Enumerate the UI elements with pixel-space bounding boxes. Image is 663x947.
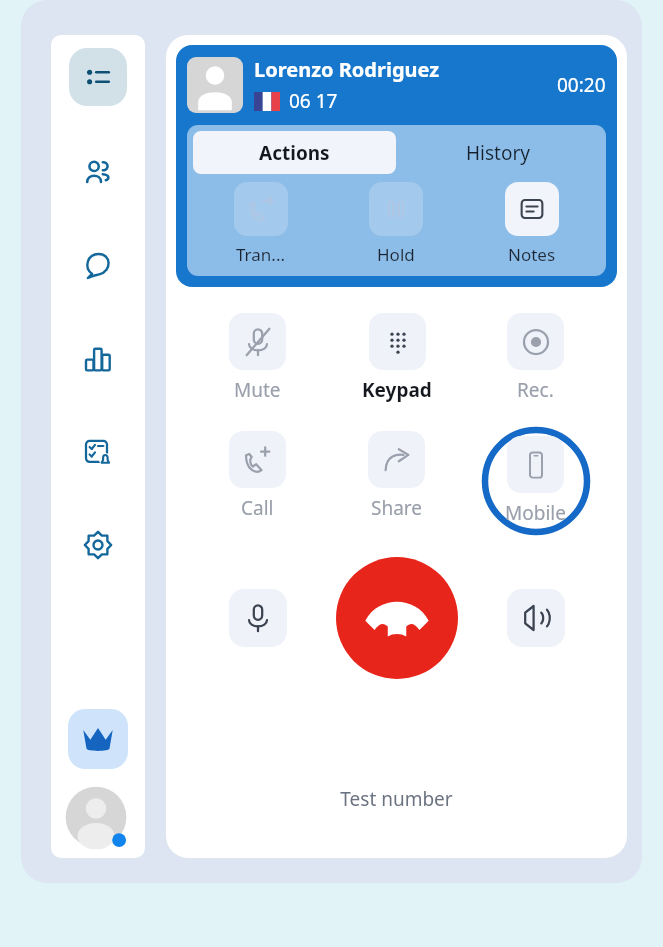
staticText: Tran... (236, 243, 285, 266)
staticText: History (466, 140, 530, 166)
staticText: Keypad (362, 377, 432, 403)
button[interactable]: Microphone (229, 589, 287, 647)
button[interactable]: Call (225, 427, 290, 525)
button[interactable]: Tran... (193, 182, 328, 266)
button[interactable]: End call (336, 557, 458, 679)
button[interactable]: Rec. (503, 309, 568, 407)
staticText: 06 17 (289, 88, 338, 114)
button[interactable]: Keypad (358, 309, 436, 407)
staticText: Mute (234, 377, 281, 403)
button[interactable]: Speaker (507, 589, 565, 647)
staticText: Lorenzo Rodriguez (254, 56, 440, 83)
button[interactable]: Checklist (69, 423, 127, 481)
staticText: Share (371, 495, 423, 521)
button[interactable]: Actions (193, 131, 396, 174)
button[interactable]: Tasks (69, 48, 127, 106)
staticText: Actions (259, 140, 330, 166)
staticText: 00:20 (557, 72, 606, 98)
staticText: Call (241, 495, 274, 521)
staticText: Rec. (517, 377, 554, 403)
button[interactable]: Share (364, 427, 429, 525)
staticText: Test number (176, 786, 617, 812)
button[interactable]: Notes (464, 182, 600, 266)
button[interactable]: Premium (68, 709, 128, 769)
staticText: Notes (508, 243, 556, 266)
button[interactable]: Chat (69, 237, 127, 295)
button[interactable]: Mobile (501, 432, 570, 530)
button[interactable]: Mute (225, 309, 290, 407)
button[interactable]: Settings (69, 516, 127, 574)
button[interactable]: Contacts (69, 144, 127, 202)
button[interactable]: Statistics (69, 330, 127, 388)
button[interactable]: Profile (65, 786, 131, 852)
button[interactable]: Hold (328, 182, 464, 266)
staticText: Hold (377, 243, 415, 266)
button[interactable]: History (396, 131, 600, 174)
staticText: Mobile (505, 500, 566, 526)
